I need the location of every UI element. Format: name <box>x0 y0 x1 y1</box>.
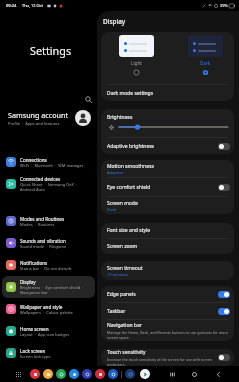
staticText: Settings <box>30 43 72 58</box>
staticText: Touch sensitivity <box>107 349 146 356</box>
button[interactable]: Motion smoothness <box>101 160 234 177</box>
button[interactable]: Touch sensitivity <box>101 349 234 366</box>
staticText: Wallpaper and style <box>20 304 63 310</box>
staticText: Quick Share · Samsung DeX · Android Auto <box>20 182 93 192</box>
staticText: Sound mode · Ringtone <box>20 244 67 249</box>
button[interactable]: Wallpaper and style <box>2 298 95 320</box>
button[interactable]: Screen mode <box>101 197 234 214</box>
staticText: Notifications <box>20 260 48 266</box>
button[interactable]: Modes and Routines <box>2 210 95 232</box>
staticText: Dark <box>200 60 211 66</box>
button[interactable]: Connected devices <box>2 173 95 195</box>
staticText: Samsung account <box>8 110 69 120</box>
staticText: Brightness · Eye comfort shield · Naviga… <box>20 285 93 295</box>
staticText: Brightness <box>107 114 133 121</box>
button[interactable]: Screen zoom <box>101 239 234 254</box>
staticText: Increase the touch sensitivity of the sc… <box>107 357 215 366</box>
staticText: Lock screen <box>20 348 46 354</box>
button[interactable]: Connections <box>2 151 95 173</box>
staticText: Manage the Home, Back, and Recents butto… <box>107 330 228 340</box>
button[interactable]: Font size and style <box>101 223 234 238</box>
button[interactable]: App <box>43 369 53 379</box>
staticText: Edge panels <box>107 291 136 298</box>
button[interactable]: Eye comfort shield <box>101 178 234 196</box>
button[interactable]: Display <box>2 276 95 298</box>
staticText: Dark mode settings <box>107 90 154 97</box>
staticText: Status bar · Do not disturb <box>20 266 72 271</box>
button[interactable]: Dark mode settings <box>101 85 234 101</box>
staticText: Display <box>103 17 126 26</box>
staticText: Light <box>131 60 142 66</box>
staticText: Connected devices <box>20 176 61 182</box>
button[interactable]: Adaptive brightness <box>101 138 234 154</box>
staticText: Navigation bar <box>107 322 142 329</box>
button[interactable]: App <box>82 369 92 379</box>
staticText: Screen lock type <box>20 354 51 359</box>
staticText: Adaptive brightness <box>107 143 155 150</box>
staticText: Connections <box>20 157 47 163</box>
button[interactable]: Samsung account <box>0 107 97 129</box>
button[interactable]: Play Store <box>140 369 150 379</box>
staticText: Modes and Routines <box>20 216 65 222</box>
staticText: Display <box>20 279 36 285</box>
button[interactable]: App <box>95 369 105 379</box>
staticText: Thu, 12 Oct <box>22 3 43 8</box>
button[interactable]: Search <box>82 93 95 106</box>
button[interactable]: Navigation bar <box>101 320 234 341</box>
staticText: Layout · App icon badges <box>20 332 70 337</box>
button[interactable]: Light <box>119 35 154 76</box>
staticText: Vivid <box>107 207 116 212</box>
button[interactable]: All apps <box>13 369 23 379</box>
staticText: Wi-Fi · Bluetooth · SIM manager <box>20 163 84 168</box>
button[interactable]: Sounds and vibration <box>2 232 95 254</box>
button[interactable]: Recent apps <box>167 369 178 380</box>
staticText: Profile · Apps and features <box>8 121 60 126</box>
staticText: Screen zoom <box>107 243 138 250</box>
staticText: Modes · Routines <box>20 222 55 227</box>
button[interactable]: Back <box>213 369 224 380</box>
button[interactable]: Taskbar <box>101 303 234 319</box>
button[interactable]: Dark <box>188 35 223 76</box>
staticText: 10 minutes <box>107 272 128 277</box>
button[interactable]: Screen timeout <box>101 261 234 280</box>
staticText: Motion smoothness <box>107 163 154 170</box>
button[interactable]: App <box>69 369 79 379</box>
button[interactable]: App <box>125 369 135 379</box>
staticText: Font size and style <box>107 227 151 234</box>
staticText: Sounds and vibration <box>20 238 66 244</box>
button[interactable]: Edge panels <box>101 286 234 302</box>
staticText: 39% <box>220 3 228 8</box>
staticText: Screen mode <box>107 200 138 207</box>
staticText: Home screen <box>20 326 49 332</box>
button[interactable]: App <box>56 369 66 379</box>
staticText: Taskbar <box>107 308 126 315</box>
staticText: 09:24 <box>6 3 17 8</box>
staticText: Screen timeout <box>107 265 143 272</box>
button[interactable]: Lock screen <box>2 342 95 364</box>
staticText: Adaptive <box>107 170 124 175</box>
staticText: Wallpapers · Colour palette <box>20 310 73 315</box>
button[interactable]: Notifications <box>2 254 95 276</box>
button[interactable]: Home screen <box>2 320 95 342</box>
staticText: Eye comfort shield <box>107 184 151 191</box>
button[interactable]: Home <box>189 369 200 380</box>
button[interactable]: App <box>108 369 118 379</box>
button[interactable]: App <box>30 369 40 379</box>
